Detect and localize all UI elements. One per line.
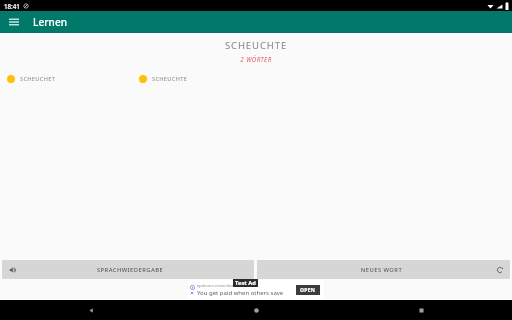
button[interactable]: Speech playback bbox=[2, 260, 254, 279]
staticText: SCHEUCHTE bbox=[152, 75, 188, 83]
staticText: 2 WÖRTER bbox=[0, 55, 512, 63]
staticText: SCHEUCHET bbox=[20, 75, 56, 83]
staticText: SCHEUCHTE bbox=[0, 39, 512, 52]
button[interactable]: SCHEUCHTE bbox=[132, 72, 264, 86]
staticText: OPEN bbox=[300, 287, 316, 294]
staticText: SPRACHWIEDERGABE bbox=[12, 266, 248, 274]
staticText: You get paid when others save bbox=[197, 289, 284, 297]
staticText: Test Ad bbox=[235, 279, 256, 287]
staticText: Lernen bbox=[33, 15, 68, 29]
button[interactable]: Open navigation menu bbox=[6, 14, 22, 30]
staticText: igobuurs.novonline.site bbox=[197, 283, 242, 288]
button[interactable]: igobuurs.novonline.site bbox=[188, 280, 324, 300]
staticText: NEUES WORT bbox=[263, 266, 500, 274]
button[interactable]: NEUES WORT bbox=[257, 260, 510, 279]
other: New word bbox=[494, 264, 505, 275]
staticText: 18:41 bbox=[4, 2, 20, 10]
button[interactable]: Recent apps bbox=[410, 300, 432, 320]
button[interactable]: Home bbox=[245, 300, 267, 320]
button[interactable]: SCHEUCHET bbox=[0, 72, 132, 86]
other: Speech playback bbox=[7, 264, 18, 275]
button[interactable]: OPEN bbox=[296, 285, 320, 295]
button[interactable]: Back bbox=[80, 300, 102, 320]
